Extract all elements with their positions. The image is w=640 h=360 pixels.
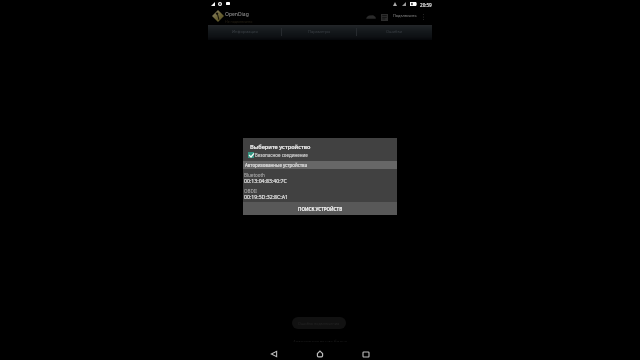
button[interactable]: Ошибка подключения (292, 317, 346, 329)
button[interactable]: Информация (208, 25, 282, 40)
staticText: OBDII (244, 188, 257, 194)
button[interactable]: Log (378, 10, 391, 24)
staticText: OpenDiag (225, 11, 249, 18)
staticText: Выберите устройство (250, 143, 311, 151)
staticText: Подключить (393, 13, 417, 18)
staticText: Безопасное соединение (255, 152, 308, 158)
button[interactable]: Bluetooth (243, 169, 397, 185)
staticText: Автоопределение блока (293, 339, 348, 345)
staticText: Ошибка подключения (298, 321, 340, 326)
button[interactable]: Безопасное соединение (248, 151, 308, 159)
button[interactable]: Vehicle (363, 10, 379, 24)
button[interactable]: OBDII (243, 185, 397, 201)
button[interactable]: Home (312, 346, 328, 360)
staticText: ПОИСК УСТРОЙСТВ (298, 206, 343, 212)
staticText: Информация (232, 29, 258, 34)
staticText: Ошибки (386, 29, 403, 34)
button[interactable]: Параметры (282, 25, 357, 40)
staticText: Параметры (308, 29, 331, 34)
staticText: 00:19:5D:32:8C:A1 (244, 193, 289, 200)
staticText: Bluetooth (244, 172, 265, 178)
staticText: 00:13:04:83:40:7C (244, 177, 287, 184)
staticText: 20:59 (420, 2, 432, 8)
button[interactable]: Back (266, 346, 282, 360)
button[interactable]: Ошибки (357, 25, 432, 40)
button[interactable]: ПОИСК УСТРОЙСТВ (243, 202, 397, 215)
button[interactable]: More options (418, 10, 428, 24)
staticText: Не подключено (225, 19, 253, 24)
button[interactable]: Recents (358, 346, 374, 360)
staticText: Авторизованные устройства (245, 162, 308, 168)
button[interactable]: Подключить (391, 9, 419, 23)
